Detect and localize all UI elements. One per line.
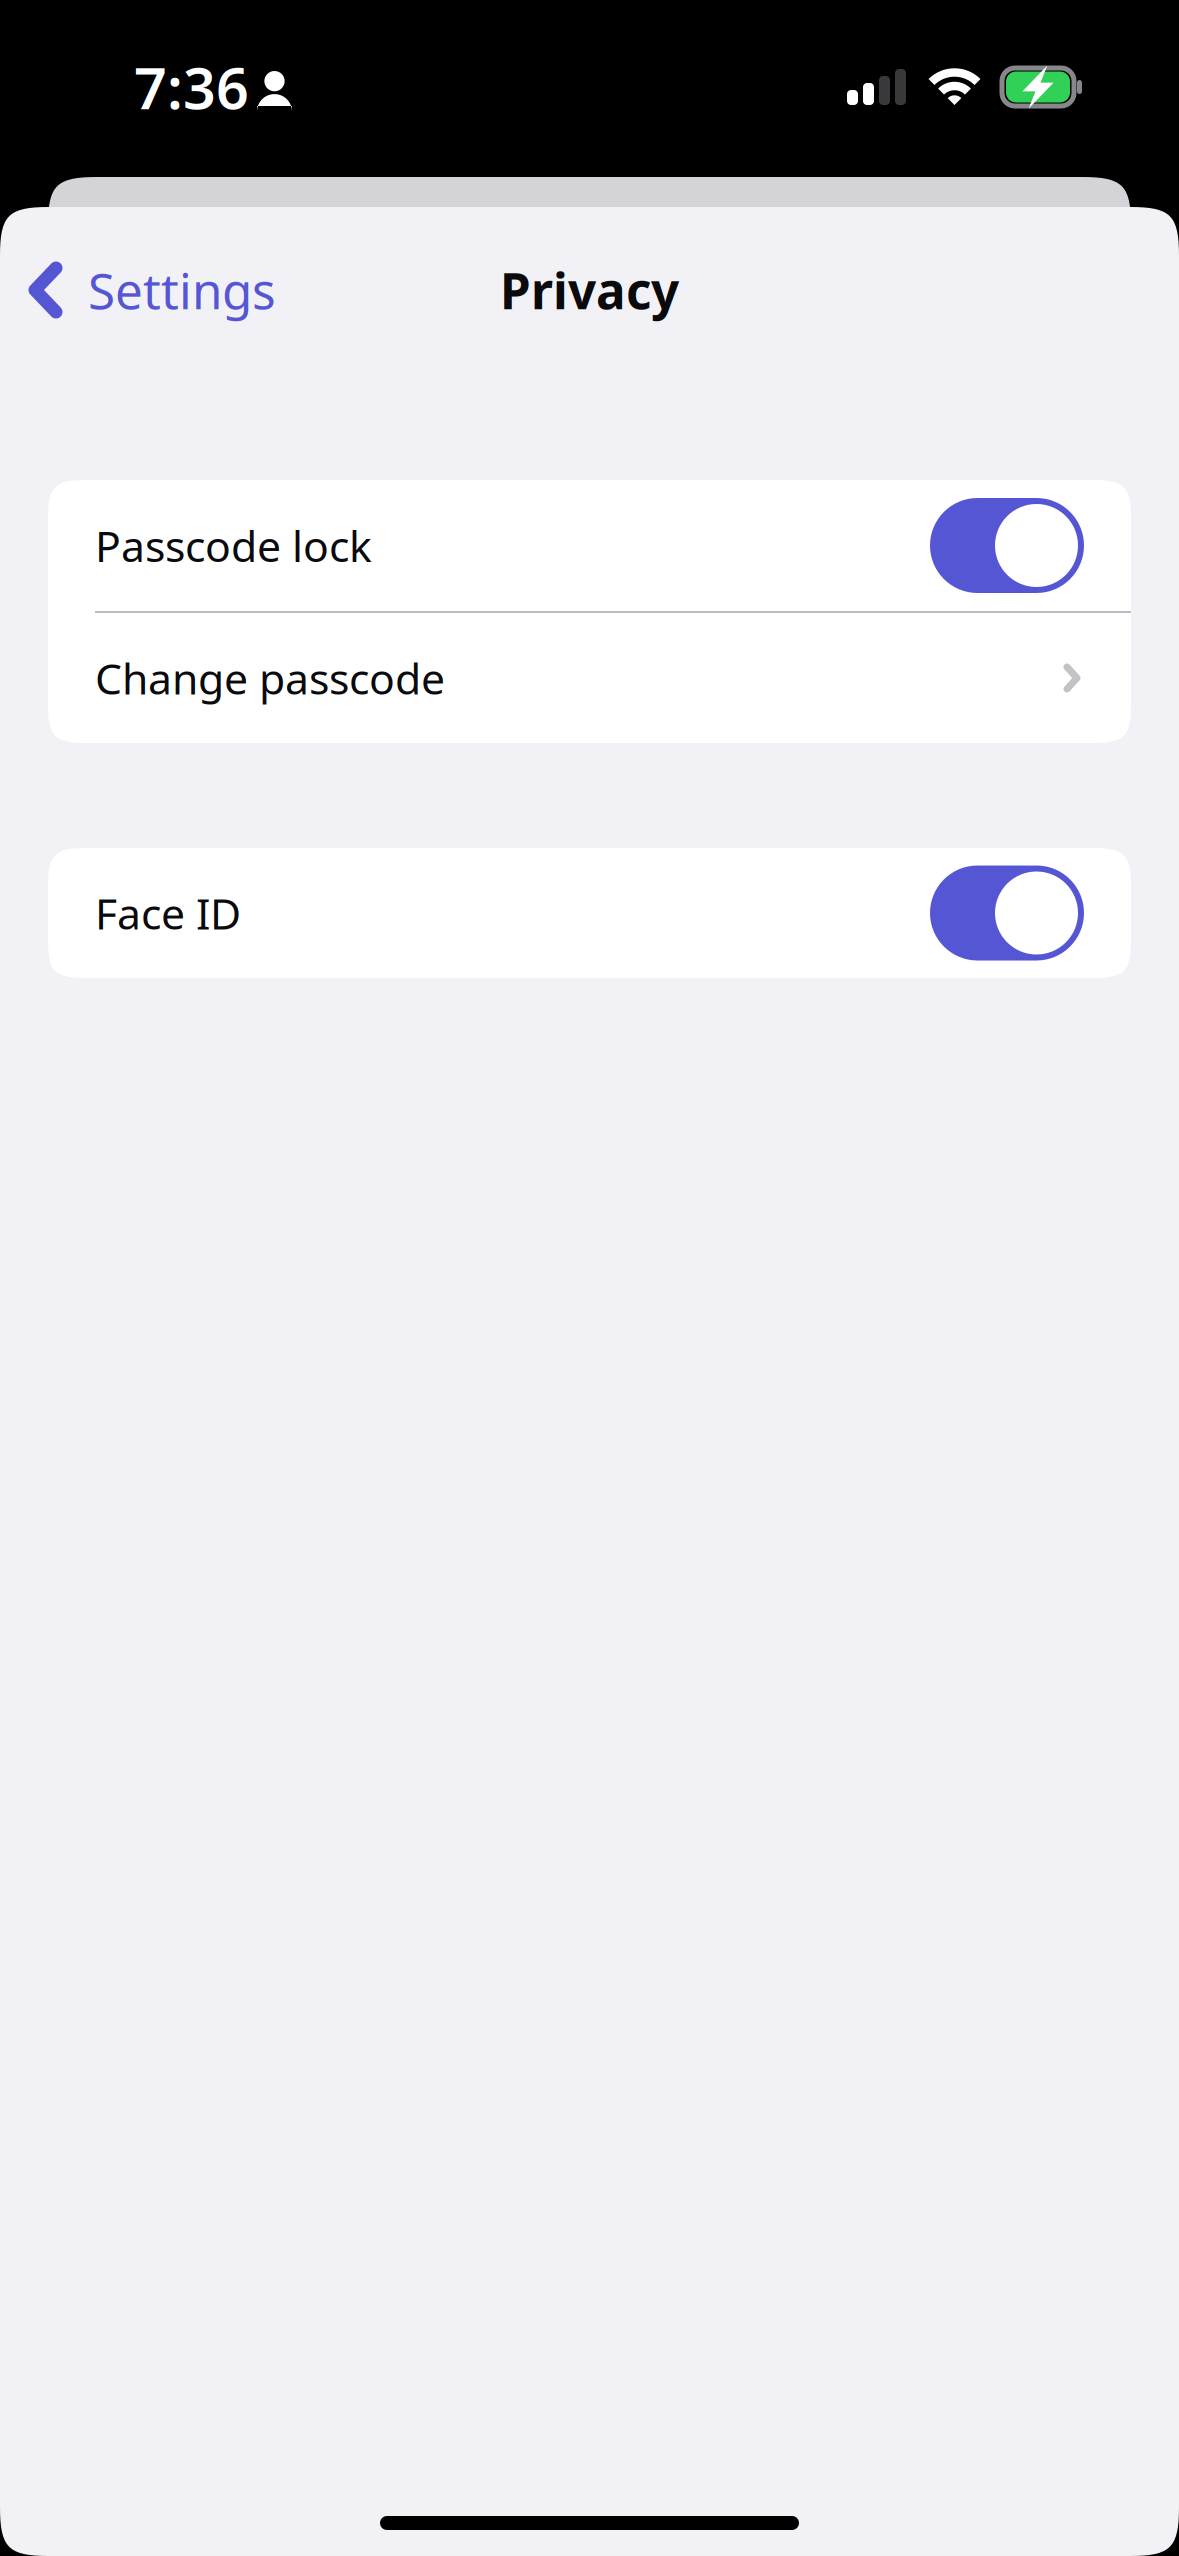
button[interactable]: Face ID bbox=[48, 848, 1131, 978]
staticText: Settings bbox=[88, 257, 276, 323]
button[interactable]: Passcode lock bbox=[48, 480, 1131, 611]
button[interactable]: Change passcode bbox=[48, 613, 1131, 743]
staticText: 7:36 bbox=[134, 49, 249, 125]
button[interactable]: Settings bbox=[0, 243, 296, 337]
staticText: Privacy bbox=[500, 257, 679, 323]
button[interactable]: Passcode lock, on bbox=[930, 498, 1084, 593]
staticText: Passcode lock bbox=[95, 517, 372, 574]
button[interactable]: Face ID, on bbox=[930, 865, 1084, 960]
staticText: Face ID bbox=[95, 885, 241, 941]
staticText: Change passcode bbox=[95, 650, 445, 706]
